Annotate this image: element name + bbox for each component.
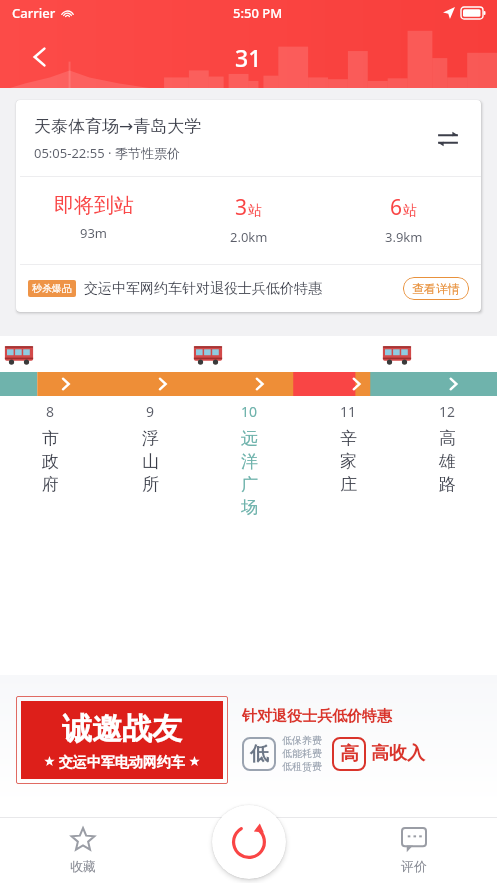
staticText: 洋 [241, 451, 258, 472]
staticText: 秒杀爆品 [32, 282, 72, 295]
staticText: 低租赁费 [282, 760, 322, 773]
button[interactable]: 11 [299, 402, 398, 496]
button[interactable]: 天泰体育场→青岛大学 [16, 100, 481, 176]
staticText: 交运中军网约车针对退役士兵低价特惠 [84, 280, 322, 298]
staticText: 05:05-22:55 · 季节性票价 [34, 144, 180, 162]
button[interactable]: 8 [0, 402, 100, 496]
button[interactable]: Swap direction [431, 122, 465, 156]
staticText: 高 [439, 428, 456, 449]
staticText: 山 [142, 451, 159, 472]
staticText: 远 [241, 428, 258, 449]
staticText: 浮 [142, 428, 159, 449]
staticText: 站 [403, 202, 417, 220]
staticText: 场 [241, 497, 258, 518]
staticText: 评价 [401, 858, 427, 874]
staticText: 庄 [340, 474, 357, 495]
staticText: 2.0km [230, 228, 268, 246]
button[interactable]: 12 [398, 402, 497, 496]
button[interactable]: 10 [200, 402, 299, 519]
button[interactable]: Back [18, 35, 62, 79]
staticText: 天泰体育场→青岛大学 [34, 116, 202, 137]
staticText: 低能耗费 [282, 747, 322, 760]
staticText: 站 [248, 202, 262, 220]
staticText: Carrier [12, 4, 56, 22]
staticText: 府 [42, 474, 59, 495]
staticText: 诚邀战友 [62, 710, 182, 748]
staticText: 低保养费 [282, 734, 322, 747]
staticText: 高 [340, 742, 359, 766]
staticText: 针对退役士兵低价特惠 [242, 707, 392, 726]
staticText: 高收入 [371, 742, 425, 765]
button[interactable]: 查看详情 [403, 277, 469, 300]
staticText: 8 [46, 402, 55, 421]
staticText: 3.9km [385, 228, 423, 246]
staticText: 查看详情 [412, 281, 460, 296]
button[interactable]: Advertisement [0, 675, 497, 805]
staticText: 31 [235, 42, 262, 73]
staticText: 雄 [439, 451, 456, 472]
staticText: 辛 [340, 428, 357, 449]
button[interactable]: 9 [100, 402, 200, 496]
staticText: 9 [146, 402, 155, 421]
button[interactable]: 秒杀爆品 [16, 265, 481, 312]
staticText: 3 [235, 193, 248, 222]
staticText: 广 [241, 474, 258, 495]
staticText: 即将到站 [54, 193, 134, 218]
staticText: 路 [439, 474, 456, 495]
staticText: 93m [80, 224, 108, 242]
staticText: 收藏 [70, 858, 96, 874]
staticText: 12 [439, 402, 456, 421]
staticText: 政 [42, 451, 59, 472]
staticText: 家 [340, 451, 357, 472]
staticText: 5:50 PM [233, 4, 283, 22]
button[interactable]: 收藏 [0, 817, 165, 883]
button[interactable]: 评价 [331, 817, 497, 883]
button[interactable]: Refresh [212, 805, 286, 879]
staticText: 11 [340, 402, 357, 421]
staticText: 10 [241, 402, 258, 421]
staticText: 低 [250, 742, 269, 766]
staticText: 市 [42, 428, 59, 449]
staticText: 6 [390, 193, 403, 222]
staticText: 所 [142, 474, 159, 495]
staticText: 交运中军电动网约车 [55, 752, 189, 771]
